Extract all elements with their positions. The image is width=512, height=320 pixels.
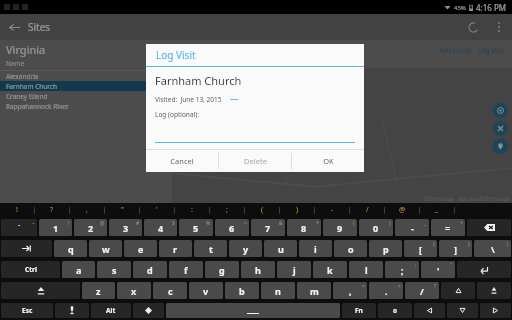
staticText: Fn [355, 306, 363, 315]
staticText: Log (optional): [155, 110, 199, 119]
button[interactable]: Log Visit [478, 46, 504, 55]
button[interactable]: Fn [342, 303, 376, 318]
button[interactable]: Cancel [146, 150, 218, 172]
button[interactable]: o [334, 240, 367, 257]
button[interactable]: ! [0, 203, 34, 217]
button[interactable]: , [70, 203, 104, 217]
button[interactable]: c [153, 282, 187, 299]
button[interactable]: Craney Island [0, 91, 172, 101]
button[interactable]: Ctrl [1, 261, 60, 278]
button[interactable]: Place [493, 139, 508, 154]
button[interactable]: b [225, 282, 259, 299]
button[interactable]: u [264, 240, 297, 257]
button[interactable]: e [124, 240, 157, 257]
button[interactable]: ] [439, 240, 472, 257]
button[interactable]: f [169, 261, 203, 278]
button[interactable]: y [229, 240, 262, 257]
button[interactable]: 8 [287, 219, 321, 236]
button[interactable]: w [89, 240, 122, 257]
button[interactable]: = [431, 219, 465, 236]
button[interactable]: Refresh [464, 18, 482, 36]
button[interactable]: Right [480, 303, 511, 318]
button[interactable]: " [105, 203, 139, 217]
button[interactable]: Delete [219, 150, 291, 172]
button[interactable]: [ [404, 240, 437, 257]
button[interactable]: k [313, 261, 347, 278]
button[interactable]: : [175, 203, 209, 217]
button[interactable]: More options [492, 18, 506, 36]
button[interactable]: _ [420, 203, 454, 217]
button[interactable]: - [315, 203, 349, 217]
button[interactable]: Up [441, 282, 475, 299]
button[interactable]: My location [493, 103, 508, 118]
button[interactable]: h [241, 261, 275, 278]
button[interactable]: v [189, 282, 223, 299]
button[interactable]: ? [35, 203, 69, 217]
button[interactable]: t [194, 240, 227, 257]
button[interactable]: n [261, 282, 295, 299]
button[interactable]: Farnham Church [0, 81, 172, 91]
button[interactable]: p [369, 240, 402, 257]
button[interactable]: 5 [179, 219, 213, 236]
button[interactable]: Lang [133, 303, 164, 318]
staticText: ? [434, 283, 437, 290]
button[interactable]: Shift right [477, 282, 511, 299]
button[interactable]: Farnham Church [180, 43, 259, 57]
button[interactable]: m [297, 282, 331, 299]
staticText: \ [491, 243, 495, 255]
button[interactable]: a [62, 261, 95, 278]
button[interactable]: d [133, 261, 167, 278]
button[interactable]: Tab [1, 240, 52, 257]
button[interactable]: ' [421, 261, 455, 278]
button[interactable]: - [395, 219, 429, 236]
button[interactable]: g [205, 261, 239, 278]
button[interactable]: Add to List [439, 46, 472, 55]
button[interactable]: Back [8, 20, 51, 34]
button[interactable]: l [349, 261, 383, 278]
staticText: = [445, 222, 451, 234]
button[interactable]: , [333, 282, 367, 299]
button[interactable]: Space [166, 303, 340, 318]
button[interactable]: Alt [91, 303, 131, 318]
button[interactable]: ; [385, 261, 419, 278]
staticText: Sites [28, 20, 51, 34]
button[interactable]: Esc [1, 303, 53, 318]
button[interactable]: s [97, 261, 131, 278]
button[interactable]: 3 [109, 219, 142, 236]
button[interactable]: / [350, 203, 384, 217]
button[interactable]: 7 [251, 219, 285, 236]
button[interactable]: 1 [39, 219, 72, 236]
button[interactable]: Left [414, 303, 445, 318]
button[interactable]: Rappahannock River [0, 101, 172, 111]
button[interactable]: q [54, 240, 87, 257]
button[interactable]: Close [493, 121, 508, 136]
button[interactable]: / [405, 282, 439, 299]
button[interactable]: 6 [215, 219, 249, 236]
button[interactable]: o [378, 303, 412, 318]
button[interactable]: ( [245, 203, 279, 217]
button[interactable]: i [299, 240, 332, 257]
button[interactable]: Shift [1, 282, 80, 299]
button[interactable]: z [82, 282, 115, 299]
button[interactable]: j [277, 261, 311, 278]
button[interactable]: ` [1, 219, 37, 236]
button[interactable]: ) [280, 203, 314, 217]
button[interactable]: \ [474, 240, 511, 257]
button[interactable]: 0 [359, 219, 393, 236]
button[interactable]: @ [385, 203, 419, 217]
button[interactable]: Enter [457, 261, 511, 278]
button[interactable]: ' [140, 203, 174, 217]
button[interactable]: Down [447, 303, 478, 318]
button[interactable]: ; [210, 203, 244, 217]
button[interactable]: Voice [55, 303, 89, 318]
button[interactable]: 9 [323, 219, 357, 236]
button[interactable]: OK [292, 150, 364, 172]
button[interactable]: r [159, 240, 192, 257]
button[interactable]: . [369, 282, 403, 299]
staticText: 6 [229, 222, 235, 234]
button[interactable]: x [117, 282, 151, 299]
button[interactable]: Alexandria [0, 71, 172, 81]
button[interactable]: 2 [74, 219, 107, 236]
button[interactable]: 4 [144, 219, 177, 236]
button[interactable]: Backspace [467, 219, 511, 236]
